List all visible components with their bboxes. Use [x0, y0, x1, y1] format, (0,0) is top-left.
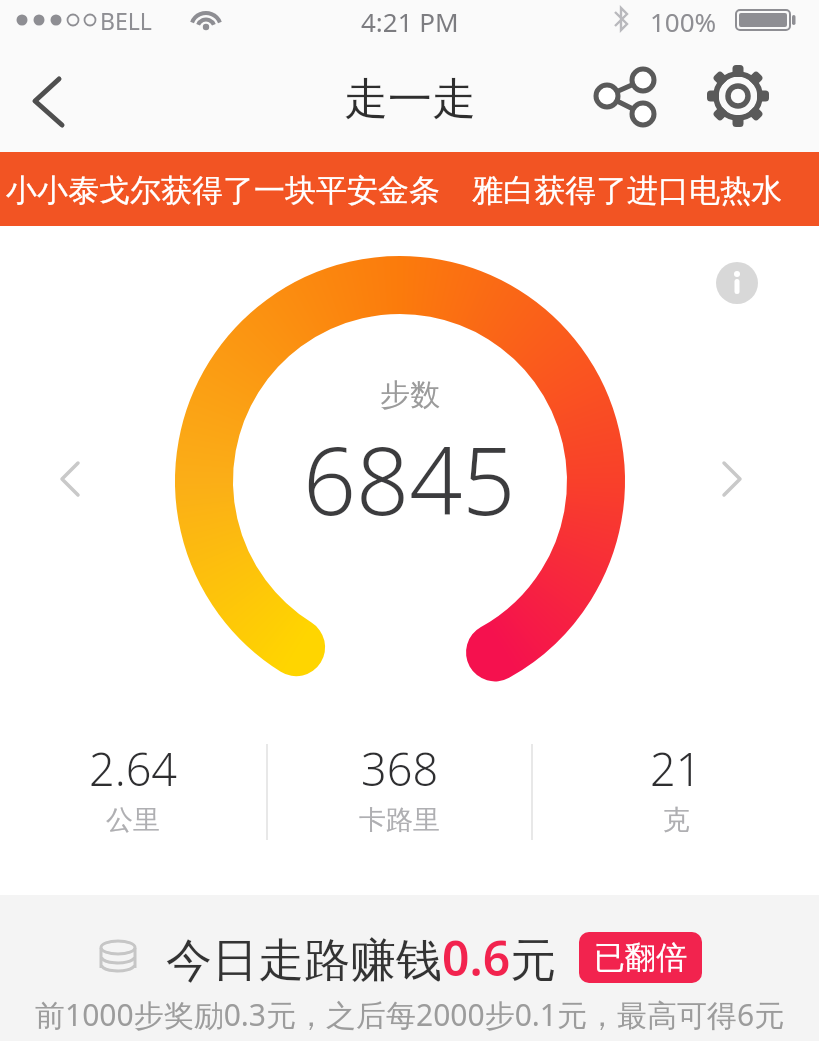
button[interactable]: 今日走路赚钱0.6元	[98, 925, 702, 990]
staticText: 公里	[106, 803, 160, 837]
staticText: 前1000步奖励0.3元，之后每2000步0.1元，最高可得6元	[35, 994, 785, 1035]
staticText: 小小泰戈尔获得了一块平安金条 雅白获得了进口电热水	[6, 168, 783, 210]
staticText: 4:21 PM	[361, 4, 459, 39]
staticText: 已翻倍	[594, 938, 687, 977]
staticText: BELL	[100, 5, 152, 36]
staticText: 克	[663, 803, 690, 837]
staticText: 6845	[303, 416, 516, 543]
button[interactable]	[702, 451, 762, 511]
staticText: 2.64	[89, 738, 178, 799]
button[interactable]	[698, 58, 778, 138]
button[interactable]	[572, 60, 672, 140]
button[interactable]: 小小泰戈尔获得了一块平安金条 雅白获得了进口电热水	[0, 152, 819, 226]
button[interactable]: 2.64	[0, 738, 266, 837]
staticText: 21	[650, 738, 702, 799]
button[interactable]: 368	[268, 738, 531, 837]
staticText: 今日走路赚钱0.6元	[166, 925, 557, 990]
button[interactable]	[16, 56, 80, 148]
button[interactable]	[715, 261, 759, 305]
staticText: 100%	[650, 4, 717, 39]
staticText: 368	[361, 738, 439, 799]
staticText: 走一走	[344, 72, 476, 127]
staticText: 卡路里	[359, 803, 440, 837]
staticText: 步数	[380, 376, 440, 414]
button[interactable]	[40, 451, 100, 511]
button[interactable]: 21	[533, 738, 819, 837]
